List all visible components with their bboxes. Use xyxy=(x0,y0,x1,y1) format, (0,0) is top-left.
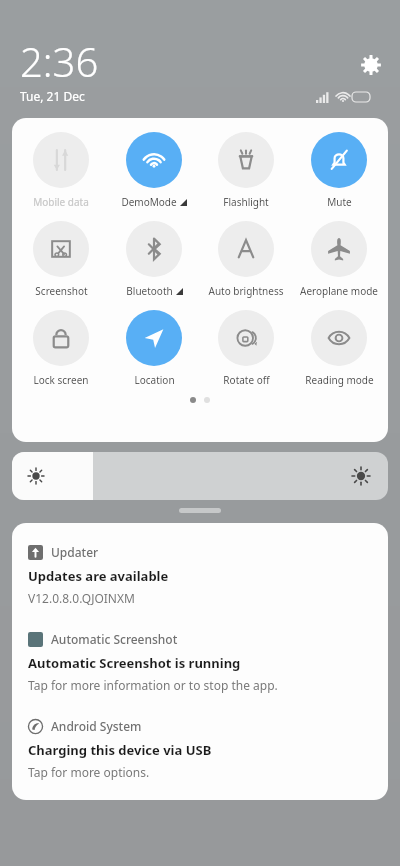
staticText: Auto brightness xyxy=(208,284,284,298)
button[interactable]: Reading mode xyxy=(295,310,383,387)
staticText: DemoMode xyxy=(121,195,177,209)
staticText: Location xyxy=(134,373,175,387)
button[interactable]: Android System xyxy=(12,705,388,792)
button[interactable]: Automatic Screenshot xyxy=(12,618,388,705)
button[interactable]: Settings xyxy=(356,50,386,80)
button[interactable]: Lock screen xyxy=(17,310,105,387)
button[interactable]: Screenshot xyxy=(17,221,105,298)
staticText: Aeroplane mode xyxy=(300,284,378,298)
staticText: Reading mode xyxy=(305,373,374,387)
staticText: Flashlight xyxy=(223,195,269,209)
button[interactable]: Bluetooth xyxy=(110,221,198,298)
button[interactable]: Flashlight xyxy=(202,132,290,209)
staticText: Lock screen xyxy=(33,373,89,387)
button[interactable]: Rotate off xyxy=(202,310,290,387)
staticText: Rotate off xyxy=(223,373,270,387)
button[interactable]: DemoMode xyxy=(110,132,198,209)
staticText: Bluetooth xyxy=(126,284,173,298)
staticText: Automatic Screenshot xyxy=(51,631,178,647)
staticText: Updates are available xyxy=(28,567,169,585)
staticText: Automatic Screenshot is running xyxy=(28,654,241,672)
staticText: 2:36 xyxy=(20,34,99,88)
button[interactable]: Auto brightness xyxy=(202,221,290,298)
button[interactable]: Aeroplane mode xyxy=(295,221,383,298)
staticText: Android System xyxy=(51,718,142,734)
staticText: Mute xyxy=(327,195,352,209)
staticText: Screenshot xyxy=(35,284,88,298)
button[interactable]: Mobile data xyxy=(17,132,105,209)
staticText: V12.0.8.0.QJOINXM xyxy=(28,590,135,606)
staticText: Tap for more options. xyxy=(28,764,150,780)
staticText: Updater xyxy=(51,544,99,560)
staticText: Tue, 21 Dec xyxy=(20,88,85,104)
button[interactable]: Location xyxy=(110,310,198,387)
button[interactable]: Updater xyxy=(12,531,388,618)
staticText: Charging this device via USB xyxy=(28,741,212,759)
staticText: Tap for more information or to stop the … xyxy=(28,677,278,693)
button[interactable]: Mute xyxy=(295,132,383,209)
staticText: Mobile data xyxy=(33,195,89,209)
button[interactable]: Brightness xyxy=(12,452,388,500)
